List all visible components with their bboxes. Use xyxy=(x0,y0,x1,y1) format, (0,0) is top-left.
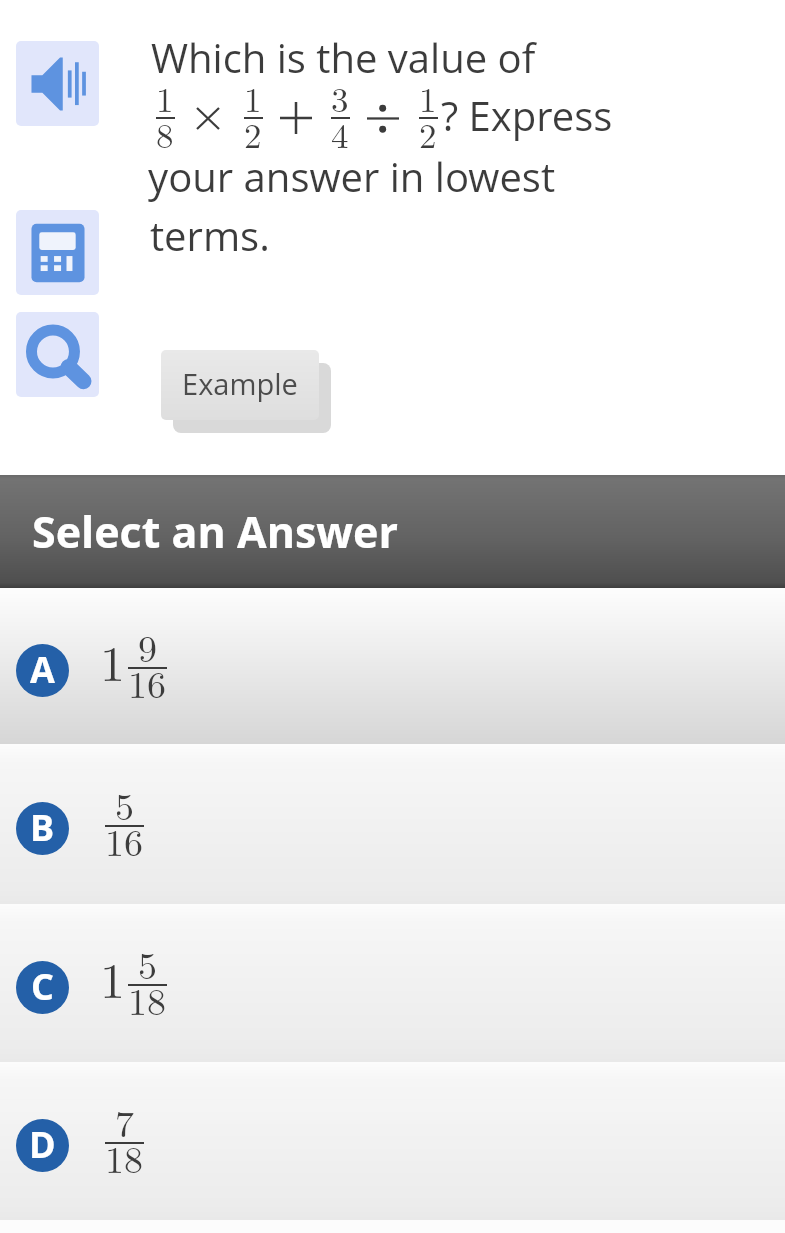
button[interactable]: C xyxy=(0,904,785,1062)
button[interactable]: Search xyxy=(16,312,99,397)
staticText: Example xyxy=(182,364,298,403)
staticText: D xyxy=(29,1120,56,1169)
staticText: Which is the value of xyxy=(151,30,536,84)
staticText: ? Express xyxy=(441,88,613,142)
staticText: 16 xyxy=(105,813,144,867)
staticText: your answer in lowest xyxy=(148,149,556,203)
staticText: 2 xyxy=(419,109,437,159)
staticText: 9 xyxy=(138,619,158,673)
staticText: 18 xyxy=(128,972,167,1026)
staticText: 1 xyxy=(244,73,262,123)
staticText: 7 xyxy=(115,1094,135,1148)
button[interactable]: B xyxy=(0,744,785,904)
staticText: C xyxy=(31,962,54,1011)
staticText: 2 xyxy=(244,109,262,159)
staticText: 3 xyxy=(331,73,349,123)
staticText: 5 xyxy=(115,777,135,831)
staticText: Select an Answer xyxy=(32,502,399,561)
button[interactable]: Example xyxy=(161,350,319,420)
staticText: 1 xyxy=(100,625,125,696)
staticText: 18 xyxy=(105,1130,144,1184)
button[interactable]: D xyxy=(0,1062,785,1220)
staticText: terms. xyxy=(150,208,270,262)
staticText: B xyxy=(30,803,55,852)
button[interactable]: A xyxy=(0,588,785,744)
button[interactable]: Listen to question xyxy=(16,41,99,126)
button[interactable]: Calculator xyxy=(16,210,99,295)
staticText: 16 xyxy=(128,655,167,709)
staticText: 1 xyxy=(156,73,174,123)
staticText: 8 xyxy=(156,109,174,159)
staticText: A xyxy=(30,645,55,694)
staticText: 1 xyxy=(419,73,437,123)
staticText: 1 xyxy=(100,942,125,1013)
staticText: 4 xyxy=(331,109,349,159)
staticText: 5 xyxy=(138,936,158,990)
